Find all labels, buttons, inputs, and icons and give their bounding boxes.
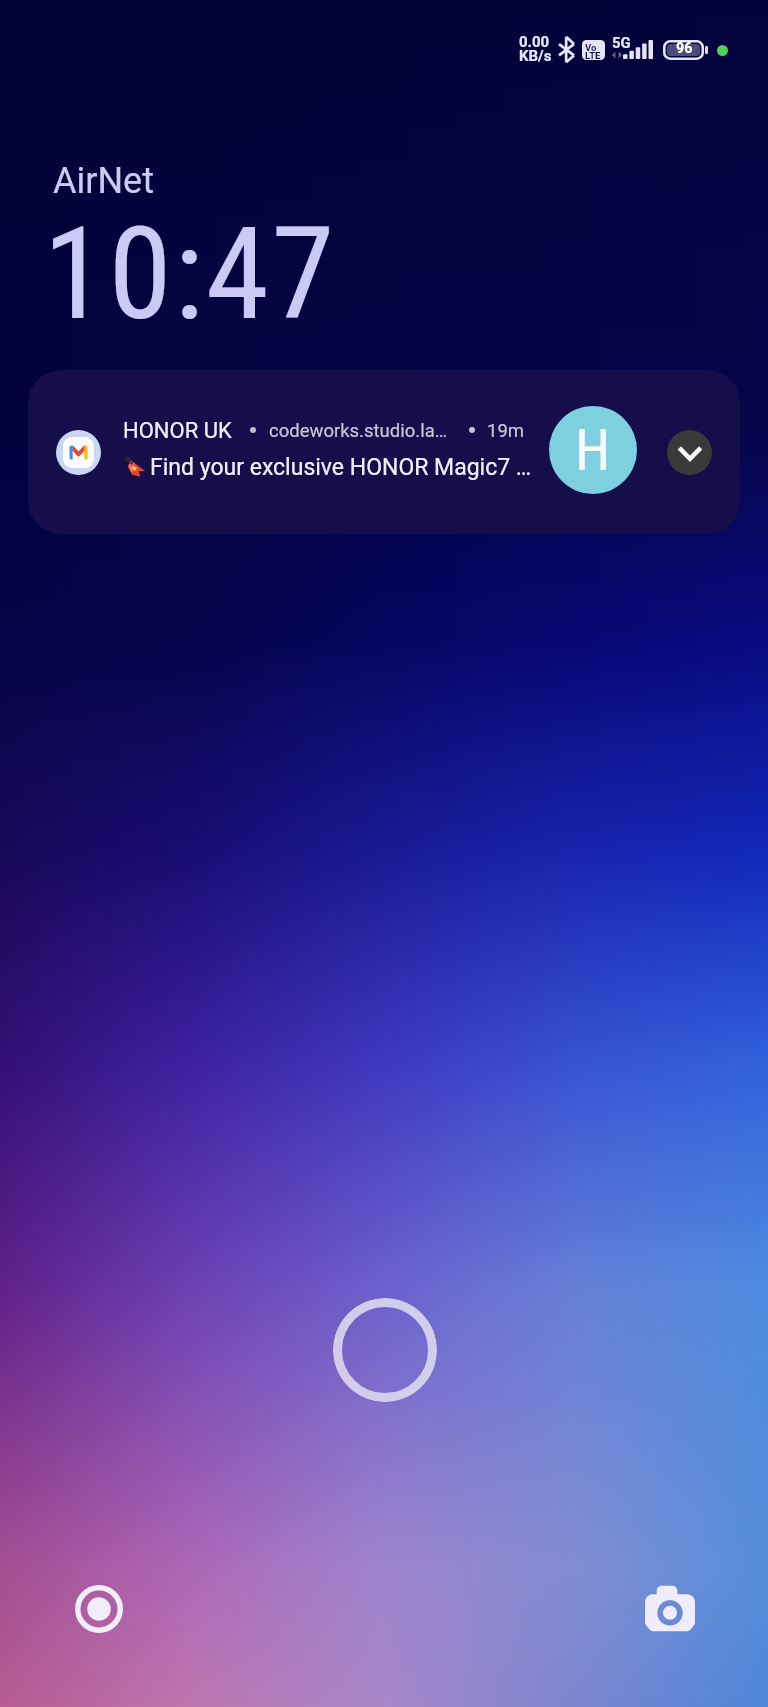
button[interactable]: Expand notification xyxy=(667,430,712,475)
staticText: 5G xyxy=(612,34,631,52)
staticText: 0.00 xyxy=(519,33,550,51)
button[interactable]: Fingerprint unlock xyxy=(333,1298,437,1402)
staticText: AirNet xyxy=(53,160,154,202)
staticText: 19m xyxy=(487,420,525,442)
button[interactable]: Flashlight xyxy=(70,1580,128,1638)
button[interactable]: HONOR UK xyxy=(28,370,740,534)
button[interactable]: Camera xyxy=(641,1580,699,1638)
staticText: 10:47 xyxy=(43,199,337,349)
staticText: Find your exclusive HONOR Magic7 … xyxy=(150,454,532,481)
staticText: codeworks.studio.la… xyxy=(269,420,448,442)
staticText: H xyxy=(575,417,611,484)
staticText: KB/s xyxy=(519,47,552,65)
staticText: Vo xyxy=(585,42,597,53)
staticText: HONOR UK xyxy=(123,418,232,444)
staticText: LTE xyxy=(585,50,601,60)
staticText: 96 xyxy=(676,40,693,57)
